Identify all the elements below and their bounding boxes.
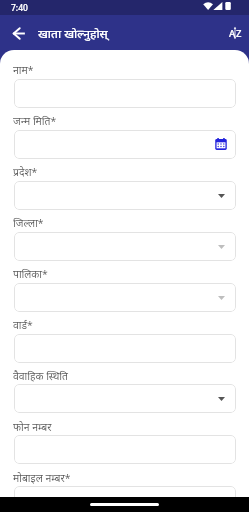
staticText: Z bbox=[236, 27, 242, 40]
staticText: फोन नम्बर bbox=[13, 420, 52, 434]
staticText: मोबाइल नम्बर* bbox=[13, 471, 71, 485]
staticText: जन्म मिति* bbox=[13, 114, 57, 128]
button[interactable] bbox=[14, 435, 236, 464]
staticText: जिल्ला* bbox=[13, 216, 44, 230]
button[interactable] bbox=[14, 181, 236, 210]
staticText: नाम* bbox=[13, 63, 34, 77]
button[interactable] bbox=[14, 232, 236, 261]
button[interactable]: Translate bbox=[225, 23, 245, 43]
button[interactable] bbox=[14, 384, 236, 413]
button[interactable] bbox=[14, 334, 236, 363]
staticText: वार्ड* bbox=[13, 318, 33, 332]
staticText: पालिका* bbox=[13, 267, 48, 281]
staticText: वैवाहिक स्थिति bbox=[13, 369, 68, 383]
staticText: 7:40 bbox=[11, 2, 28, 14]
staticText: प्रदेश* bbox=[13, 165, 38, 179]
staticText: खाता खोल्नुहोस् bbox=[38, 25, 108, 41]
button[interactable] bbox=[14, 486, 236, 512]
button[interactable] bbox=[14, 283, 236, 312]
button[interactable] bbox=[14, 79, 236, 108]
button[interactable]: Back bbox=[6, 20, 32, 46]
staticText: A bbox=[229, 27, 236, 40]
button[interactable] bbox=[14, 130, 236, 159]
